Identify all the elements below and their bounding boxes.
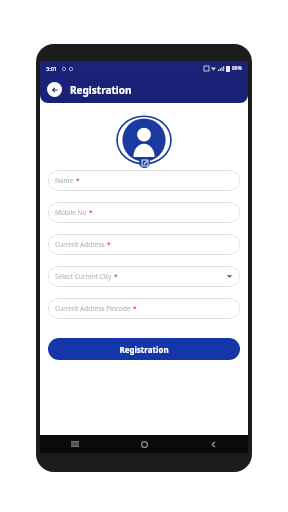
staticText: Registration bbox=[70, 83, 132, 97]
button[interactable]: Menu bbox=[40, 435, 110, 453]
button[interactable]: Back bbox=[47, 82, 62, 97]
button[interactable]: Select Current City bbox=[48, 266, 240, 287]
button[interactable]: Profile photo bbox=[117, 113, 171, 167]
staticText: * bbox=[107, 240, 111, 249]
staticText: Mobile No bbox=[55, 208, 87, 217]
staticText: * bbox=[133, 304, 137, 313]
staticText: 3:01 bbox=[46, 65, 57, 72]
button[interactable]: Registration bbox=[48, 338, 240, 360]
staticText: * bbox=[114, 272, 118, 281]
button[interactable]: Current Address bbox=[48, 234, 240, 255]
staticText: * bbox=[89, 208, 93, 217]
button[interactable]: Mobile No bbox=[48, 202, 240, 223]
staticText: Current Address bbox=[55, 240, 105, 249]
staticText: Name bbox=[55, 176, 74, 185]
button[interactable]: Current Address Pincode bbox=[48, 298, 240, 319]
staticText: Registration bbox=[119, 344, 169, 355]
button[interactable]: Back bbox=[179, 435, 248, 453]
staticText: * bbox=[76, 176, 80, 185]
staticText: 89% bbox=[232, 65, 242, 72]
button[interactable]: Name bbox=[48, 170, 240, 191]
button[interactable]: Home bbox=[110, 435, 179, 453]
staticText: Select Current City bbox=[55, 272, 112, 281]
staticText: Current Address Pincode bbox=[55, 304, 131, 313]
